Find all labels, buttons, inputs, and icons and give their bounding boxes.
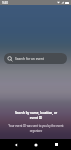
button[interactable]: Home xyxy=(30,139,41,150)
staticText: Your event ID was sent to you by the eve… xyxy=(7,124,65,132)
staticText: Search for an event xyxy=(15,57,44,61)
button[interactable]: Search for an event xyxy=(4,53,67,64)
staticText: Search by name, location, or event ID xyxy=(13,111,59,120)
button[interactable]: Recents xyxy=(51,139,62,150)
button[interactable]: Back xyxy=(10,139,21,150)
staticText: 9:30 xyxy=(2,1,8,5)
